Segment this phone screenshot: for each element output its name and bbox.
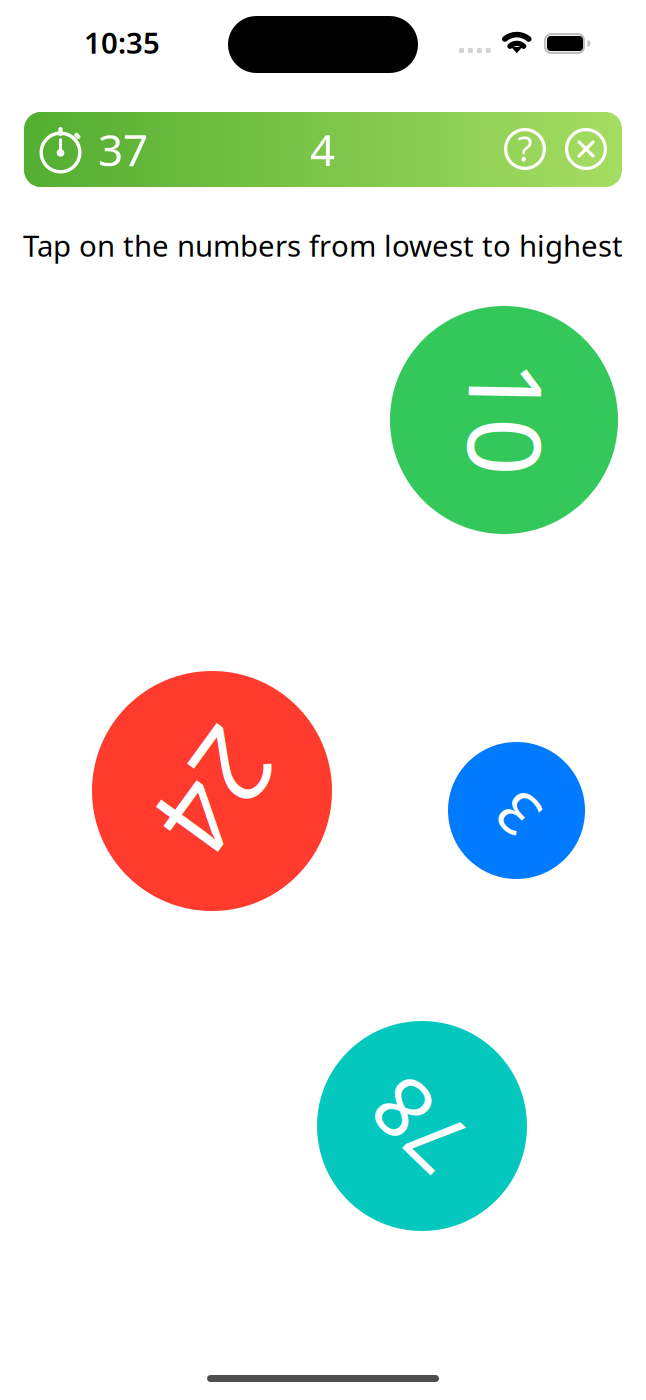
staticText: Tap on the numbers from lowest to highes… [23,226,623,265]
button[interactable]: Close [558,121,614,177]
button[interactable]: 78 [317,1021,527,1231]
staticText: 37 [98,120,148,178]
staticText: ? [517,125,532,171]
button[interactable]: 24 [92,671,332,911]
button[interactable]: 3 [448,742,585,879]
button[interactable]: Help [497,121,553,177]
staticText: 10:35 [84,23,160,62]
staticText: 4 [310,120,335,178]
staticText: 3 [500,775,534,854]
button[interactable]: Tap on the numbers from lowest to highes… [23,226,623,265]
button[interactable]: 10 [390,306,618,534]
staticText: 24 [156,722,278,863]
staticText: 10 [449,351,565,485]
staticText: 78 [371,1071,465,1181]
